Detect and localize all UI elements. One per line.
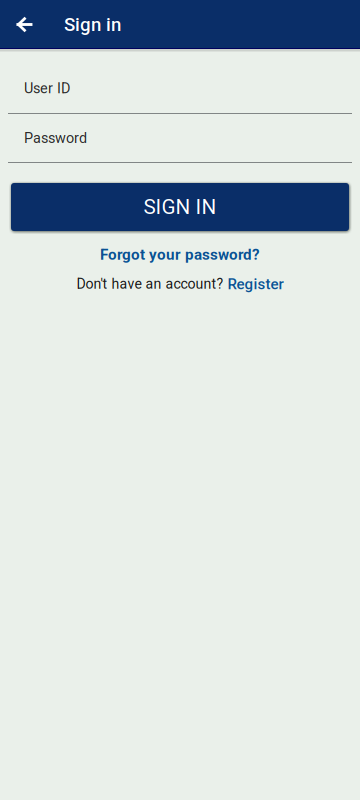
staticText: Password <box>24 130 87 146</box>
staticText: Sign in <box>64 14 121 35</box>
staticText: User ID <box>24 80 70 97</box>
button[interactable]: Password <box>0 114 360 162</box>
staticText: Don't have an account? <box>76 276 227 292</box>
staticText: Forgot your password? <box>100 246 260 263</box>
button[interactable]: User ID <box>0 49 360 113</box>
button[interactable]: Forgot your password? <box>0 244 360 265</box>
staticText: Register <box>227 275 283 293</box>
staticText: SIGN IN <box>143 195 216 219</box>
button[interactable]: Register <box>227 275 283 293</box>
button[interactable]: SIGN IN <box>11 183 349 231</box>
button[interactable]: Back <box>0 0 49 48</box>
